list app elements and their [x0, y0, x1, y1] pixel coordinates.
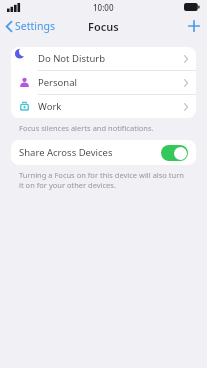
staticText: Personal — [38, 76, 184, 89]
button[interactable]: Do Not Disturb — [11, 47, 196, 71]
button[interactable]: Work — [11, 95, 196, 118]
staticText: Turning a Focus on for this device will … — [19, 170, 185, 190]
staticText: Settings — [15, 19, 55, 33]
button[interactable]: Settings — [0, 16, 61, 36]
staticText: 10:00 — [93, 2, 114, 13]
staticText: Share Across Devices — [19, 146, 161, 159]
staticText: Do Not Disturb — [38, 52, 184, 65]
staticText: Focus silences alerts and notifications. — [19, 123, 185, 133]
button[interactable]: Share Across Devices — [11, 140, 196, 165]
button[interactable]: Personal — [11, 71, 196, 95]
staticText: Focus — [88, 19, 119, 34]
button[interactable]: Add Focus — [181, 16, 207, 36]
staticText: Work — [38, 100, 184, 113]
